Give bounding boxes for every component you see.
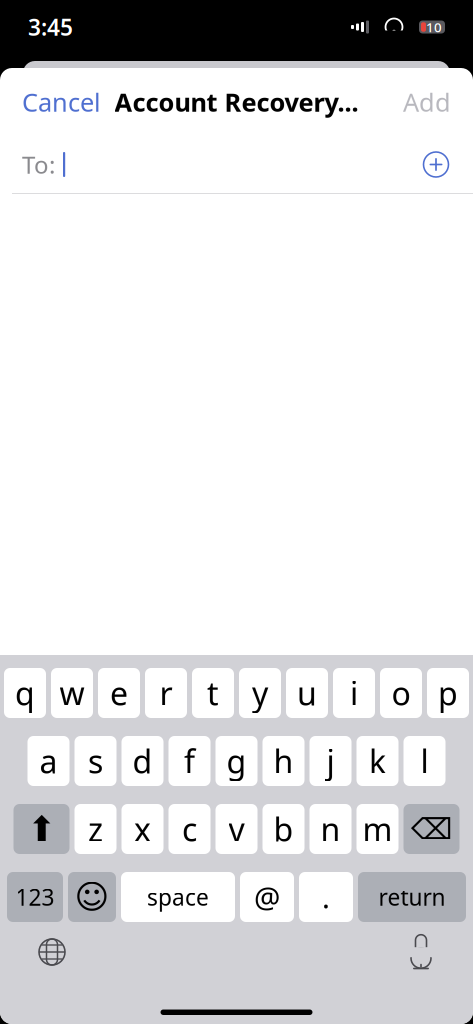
button[interactable]: Add contact xyxy=(421,149,451,179)
staticText: w xyxy=(59,672,84,714)
button[interactable]: return xyxy=(358,872,466,922)
staticText: m xyxy=(362,808,392,850)
button[interactable]: m xyxy=(356,804,398,854)
button[interactable]: Shift xyxy=(13,804,69,854)
staticText: 3:45 xyxy=(28,12,73,42)
button[interactable]: n xyxy=(309,804,351,854)
button[interactable]: Add xyxy=(403,85,451,119)
staticText: e xyxy=(110,672,128,714)
staticText: d xyxy=(132,740,152,782)
button[interactable]: Cancel xyxy=(22,85,101,119)
staticText: v xyxy=(228,808,244,850)
button[interactable]: v xyxy=(215,804,257,854)
staticText: . xyxy=(322,877,330,916)
button[interactable]: d xyxy=(121,736,163,786)
button[interactable]: space xyxy=(121,872,235,922)
button[interactable]: Delete xyxy=(403,804,459,854)
staticText: ⬆ xyxy=(27,809,56,849)
staticText: n xyxy=(320,808,340,850)
staticText: a xyxy=(39,740,57,782)
staticText: s xyxy=(88,740,103,782)
staticText: Account Recovery... xyxy=(114,85,358,119)
staticText: return xyxy=(378,882,445,912)
staticText: g xyxy=(226,740,246,782)
staticText: f xyxy=(184,740,195,782)
button[interactable]: r xyxy=(145,668,187,718)
staticText: p xyxy=(438,672,458,714)
button[interactable]: l xyxy=(403,736,445,786)
button[interactable]: Next keyboard xyxy=(38,938,66,966)
staticText: x xyxy=(134,808,151,850)
staticText: j xyxy=(326,740,334,782)
staticText: 123 xyxy=(15,882,54,912)
button[interactable]: i xyxy=(333,668,375,718)
staticText: h xyxy=(273,740,293,782)
button[interactable]: y xyxy=(239,668,281,718)
button[interactable]: Emoji xyxy=(68,872,116,922)
staticText: i xyxy=(350,672,358,714)
button[interactable]: w xyxy=(51,668,93,718)
button[interactable]: z xyxy=(74,804,116,854)
button[interactable]: e xyxy=(98,668,140,718)
staticText: t xyxy=(207,672,219,714)
staticText: l xyxy=(420,740,428,782)
button[interactable]: f xyxy=(168,736,210,786)
button[interactable]: k xyxy=(356,736,398,786)
staticText: y xyxy=(252,672,268,714)
staticText: Cancel xyxy=(22,85,101,119)
staticText: q xyxy=(15,672,35,714)
staticText: ☺ xyxy=(74,878,109,916)
staticText: z xyxy=(88,808,103,850)
button[interactable]: j xyxy=(309,736,351,786)
staticText: b xyxy=(273,808,293,850)
staticText: space xyxy=(147,882,209,912)
staticText: ⌫ xyxy=(411,812,452,846)
button[interactable]: q xyxy=(4,668,46,718)
button[interactable]: @ xyxy=(240,872,294,922)
staticText: @ xyxy=(254,877,280,916)
button[interactable]: u xyxy=(286,668,328,718)
button[interactable]: g xyxy=(215,736,257,786)
button[interactable]: Dictate xyxy=(407,934,435,970)
button[interactable]: 123 xyxy=(7,872,63,922)
button[interactable]: h xyxy=(262,736,304,786)
button[interactable]: p xyxy=(427,668,469,718)
staticText: u xyxy=(297,672,317,714)
button[interactable]: x xyxy=(121,804,163,854)
staticText: k xyxy=(369,740,386,782)
button[interactable]: . xyxy=(299,872,353,922)
button[interactable]: c xyxy=(168,804,210,854)
staticText: o xyxy=(391,672,410,714)
button[interactable]: t xyxy=(192,668,234,718)
button[interactable]: b xyxy=(262,804,304,854)
button[interactable]: o xyxy=(380,668,422,718)
staticText: r xyxy=(159,672,172,714)
staticText: c xyxy=(182,808,197,850)
staticText: 10 xyxy=(426,18,442,36)
staticText: To: xyxy=(22,149,55,180)
staticText: Add xyxy=(403,85,451,119)
button[interactable]: s xyxy=(74,736,116,786)
button[interactable]: a xyxy=(27,736,69,786)
